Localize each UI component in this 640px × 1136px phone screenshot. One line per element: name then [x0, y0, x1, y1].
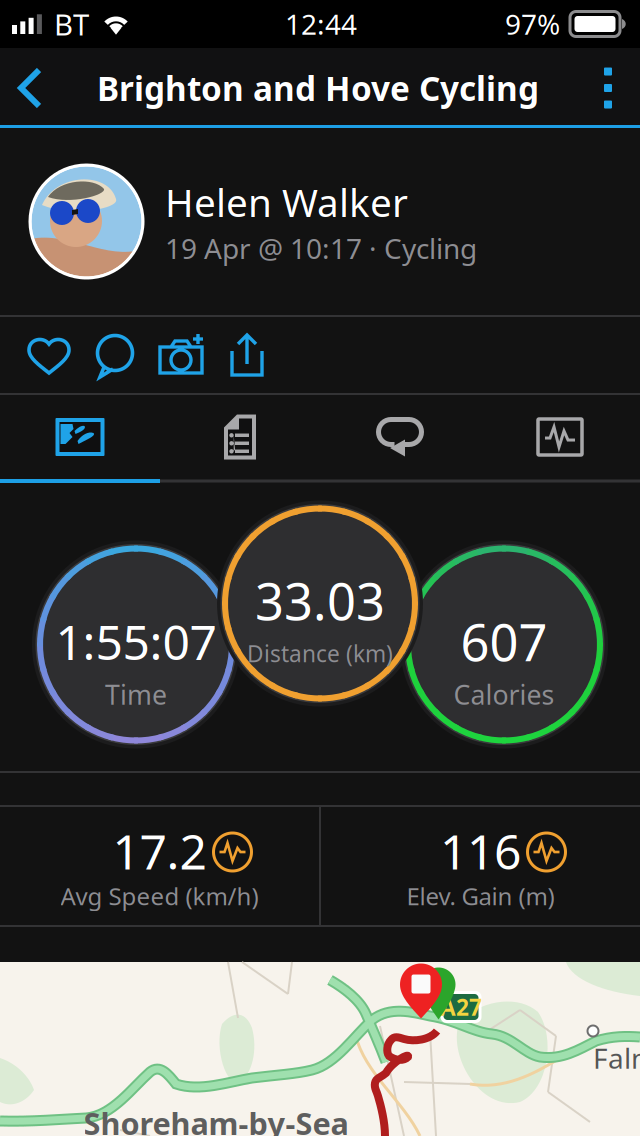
button[interactable]: Comment [82, 318, 148, 392]
staticText: Distance (km) [247, 638, 393, 668]
button[interactable]: Charts [480, 395, 640, 479]
staticText: 33.03 [255, 567, 385, 634]
staticText: Time [105, 677, 167, 712]
staticText: Helen Walker [165, 176, 408, 227]
button[interactable]: Add photo [148, 318, 214, 392]
button[interactable]: More options [576, 48, 640, 128]
staticText: A27 [440, 992, 482, 1022]
button[interactable]: Map [0, 395, 160, 479]
staticText: Calories [453, 677, 554, 712]
staticText: 607 [460, 608, 547, 675]
staticText: 12:44 [285, 5, 357, 43]
staticText: 17.2 [112, 819, 206, 883]
staticText: Elev. Gain (m) [406, 880, 554, 912]
staticText: 19 Apr @ 10:17 · Cycling [165, 230, 477, 267]
button[interactable]: Back [0, 48, 60, 128]
staticText: Brighton and Hove Cycling [97, 66, 539, 110]
staticText: Shoreham-by-Sea [83, 1103, 348, 1136]
button[interactable]: Share [214, 318, 280, 392]
button[interactable]: Details [160, 395, 320, 479]
staticText: BT [54, 4, 89, 43]
button[interactable]: Like [16, 318, 82, 392]
staticText: 97% [505, 5, 560, 43]
staticText: Falm [593, 1039, 640, 1077]
staticText: 1:55:07 [55, 610, 216, 673]
staticText: Avg Speed (km/h) [60, 880, 258, 912]
staticText: 116 [440, 819, 521, 883]
button[interactable]: Laps [320, 395, 480, 479]
